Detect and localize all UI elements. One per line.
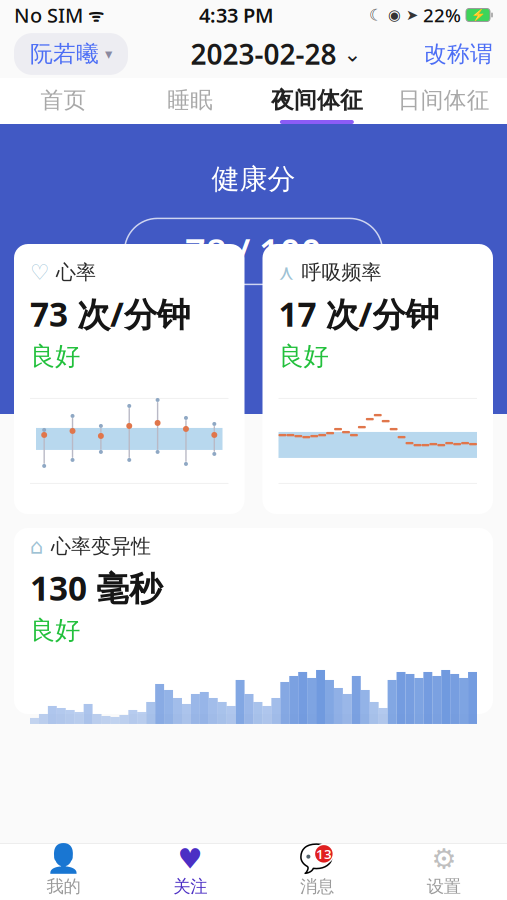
staticText: ➤ [406, 7, 418, 23]
button[interactable]: 阮若曦 [14, 33, 128, 75]
staticText: ◉ [388, 7, 401, 23]
staticText: 呼吸频率 [301, 260, 381, 285]
staticText: ♡ [30, 260, 49, 284]
staticText: 13 [316, 845, 332, 863]
button[interactable]: 夜间体征 [253, 78, 380, 124]
staticText: ⚡ [470, 8, 485, 22]
staticText: ♥ [178, 843, 203, 875]
button[interactable]: 睡眠 [127, 78, 254, 124]
button[interactable]: 💬 [253, 844, 380, 900]
staticText: 睡眠 [167, 86, 213, 114]
staticText: 心率变异性 [51, 534, 151, 559]
staticText: 消息 [300, 876, 334, 897]
staticText: 💬 [299, 843, 334, 875]
staticText: 78 / 100 [185, 227, 322, 275]
staticText: 阮若曦 [30, 40, 99, 68]
staticText: 良好 [278, 341, 328, 372]
staticText: ☾ [369, 6, 383, 24]
staticText: 夜间体征 [271, 86, 363, 114]
button[interactable]: 改称谓 [424, 40, 493, 68]
staticText: ⌄ [343, 42, 361, 66]
staticText: 17 次/分钟 [278, 292, 438, 336]
button[interactable]: ⚙ [380, 844, 507, 900]
staticText: No SIM [14, 2, 83, 28]
staticText: ▾ [105, 46, 112, 62]
staticText: 改称谓 [424, 40, 493, 68]
staticText: 日间体征 [398, 86, 490, 114]
button[interactable]: ♡ [14, 244, 244, 514]
button[interactable]: ♥ [127, 844, 254, 900]
button[interactable]: 2023-02-28 [190, 35, 361, 73]
button[interactable]: 首页 [0, 78, 127, 124]
staticText: 4:33 PM [199, 2, 274, 28]
button[interactable]: ⋏ [262, 244, 493, 514]
staticText: 关注 [173, 876, 207, 897]
button[interactable]: 日间体征 [380, 78, 507, 124]
staticText: 设置 [427, 876, 461, 897]
staticText: ᯤ [83, 3, 104, 26]
staticText: 我的 [46, 876, 80, 897]
staticText: 👤 [46, 843, 81, 875]
staticText: ⌂ [30, 534, 44, 558]
staticText: ⋏ [278, 260, 294, 284]
staticText: 73 次/分钟 [30, 292, 190, 336]
staticText: 130 毫秒 [30, 566, 162, 610]
staticText: 良好 [30, 341, 80, 372]
staticText: ⚙ [431, 843, 456, 875]
button[interactable]: ⌂ [14, 528, 493, 714]
staticText: 良好 [30, 615, 80, 646]
staticText: 2023-02-28 [190, 35, 336, 73]
staticText: 22% [423, 3, 461, 27]
button[interactable]: 👤 [0, 844, 127, 900]
staticText: 首页 [40, 86, 86, 114]
staticText: 健康分 [211, 162, 295, 196]
staticText: 心率 [56, 260, 96, 285]
